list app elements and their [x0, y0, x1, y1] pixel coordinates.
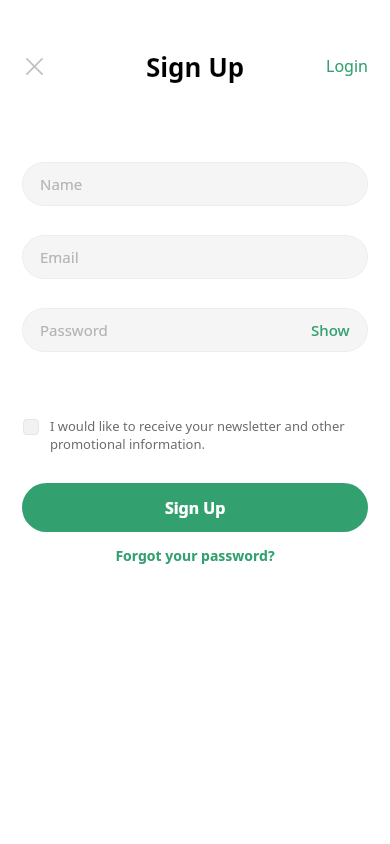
- staticText: Sign Up: [146, 49, 245, 84]
- staticText: Email: [40, 247, 79, 267]
- staticText: Login: [326, 55, 368, 77]
- button[interactable]: I would like to receive your newsletter …: [22, 417, 368, 453]
- button[interactable]: Show: [311, 320, 350, 340]
- staticText: Sign Up: [165, 497, 226, 519]
- button[interactable]: Name: [22, 162, 368, 206]
- button[interactable]: Close: [18, 50, 50, 82]
- staticText: Name: [40, 174, 83, 194]
- button[interactable]: Login: [304, 49, 390, 83]
- staticText: Password: [40, 320, 108, 340]
- button[interactable]: Password: [22, 308, 368, 352]
- staticText: I would like to receive your newsletter …: [50, 417, 368, 453]
- staticText: Show: [311, 320, 350, 340]
- button[interactable]: Sign Up: [22, 483, 368, 532]
- button[interactable]: Forgot your password?: [103, 540, 287, 571]
- button[interactable]: Email: [22, 235, 368, 279]
- staticText: Forgot your password?: [115, 546, 275, 565]
